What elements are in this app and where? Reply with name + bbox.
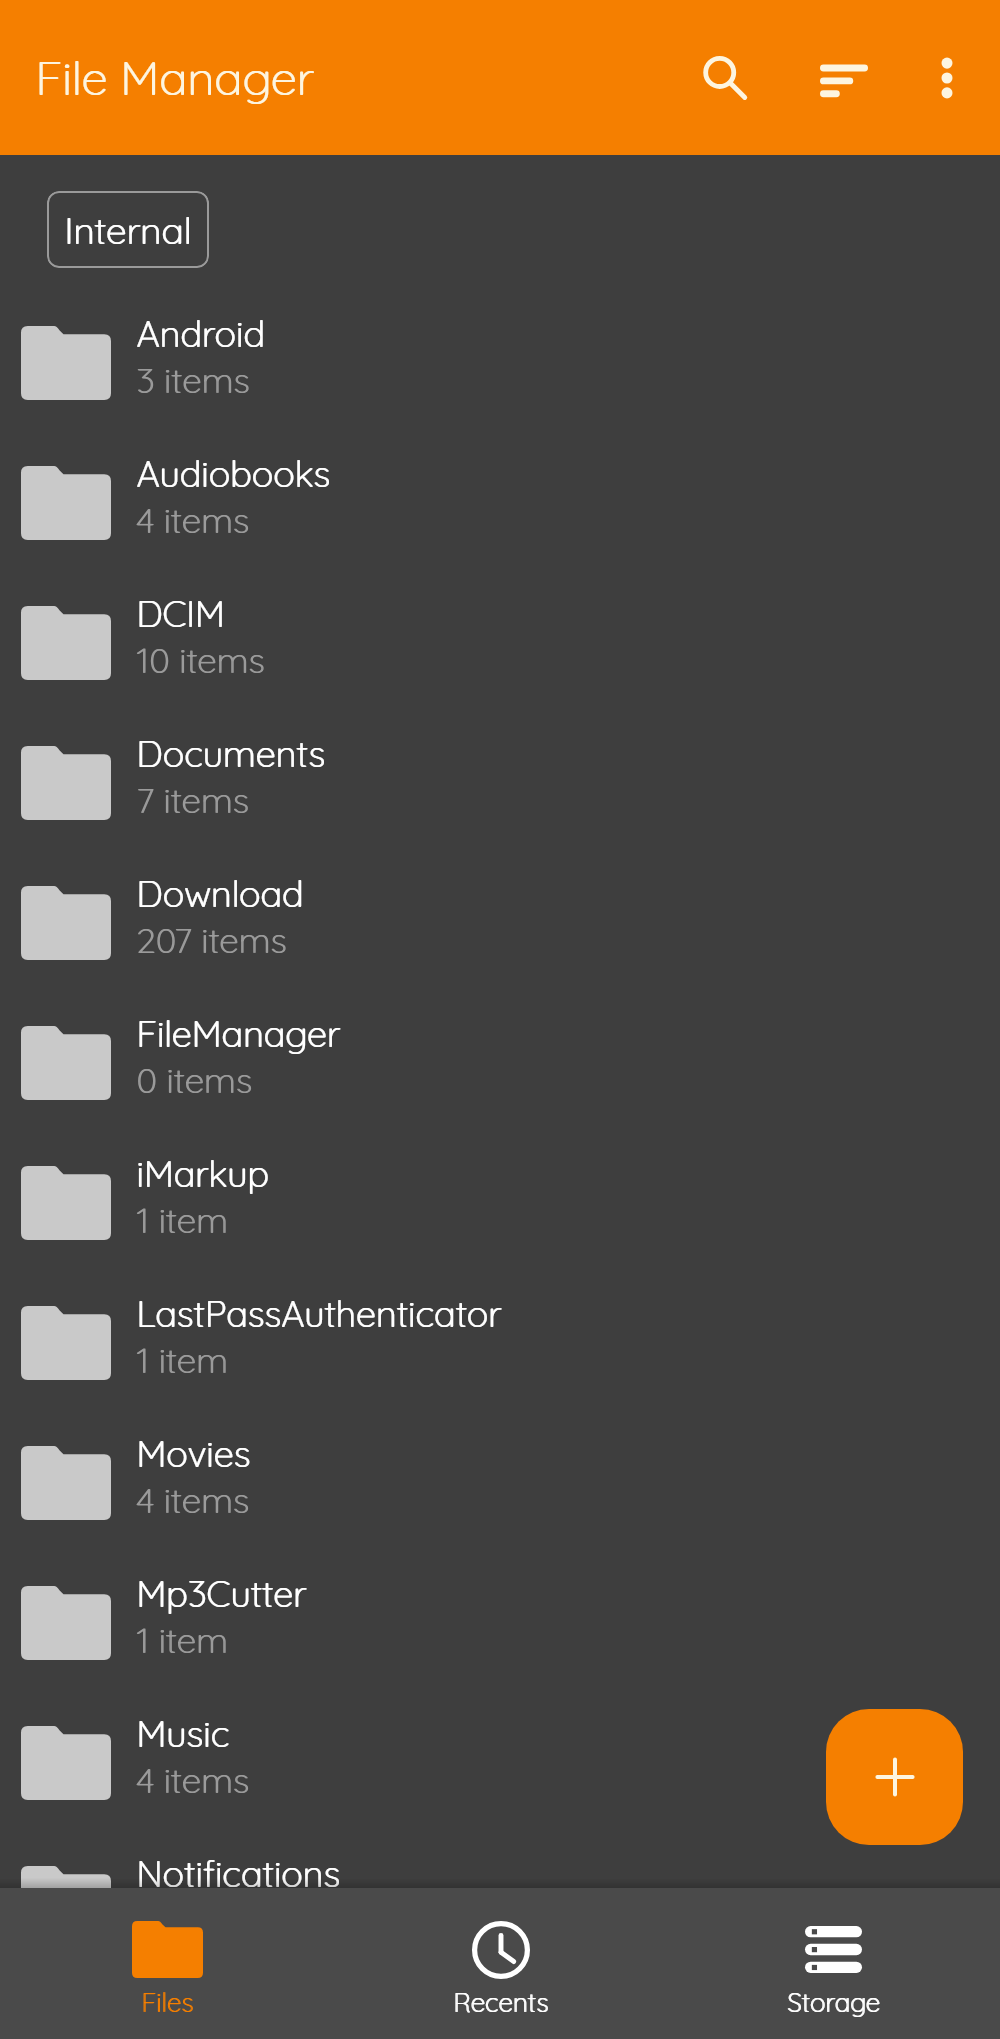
staticText: 1 item — [136, 1618, 228, 1662]
staticText: Download — [136, 871, 304, 916]
staticText: 1 item — [136, 1198, 228, 1242]
staticText: 4 items — [137, 1758, 250, 1802]
button[interactable]: iMarkup — [0, 1133, 1000, 1273]
staticText: 7 items — [137, 778, 250, 822]
button[interactable]: Add — [826, 1709, 963, 1845]
staticText: Internal — [65, 207, 193, 253]
staticText: 4 items — [137, 498, 250, 542]
staticText: Recents — [453, 1986, 549, 2019]
button[interactable]: Storage — [667, 1888, 1000, 2039]
staticText: 207 items — [137, 918, 288, 962]
staticText: Internal — [64, 207, 192, 253]
staticText: Audiobooks — [137, 451, 331, 496]
button[interactable]: Music — [0, 1693, 1000, 1833]
staticText: 207 items — [136, 918, 287, 962]
staticText: Download — [137, 871, 305, 916]
staticText: Mp3Cutter — [137, 1571, 308, 1616]
button[interactable]: Recents — [334, 1888, 667, 2039]
staticText: Notifications — [136, 1851, 340, 1888]
staticText: Recents — [454, 1986, 550, 2019]
button[interactable]: Android — [0, 293, 1000, 433]
staticText: Storage — [787, 1986, 880, 2019]
staticText: 4 items — [136, 498, 249, 542]
staticText: 3 items — [137, 358, 251, 402]
staticText: Movies — [136, 1431, 250, 1476]
button[interactable]: Notifications — [0, 1833, 1000, 1888]
button[interactable]: Files — [0, 1888, 334, 2039]
staticText: 3 items — [136, 358, 250, 402]
staticText: Android — [136, 311, 265, 356]
button[interactable]: Mp3Cutter — [0, 1553, 1000, 1693]
staticText: FileManager — [136, 1011, 340, 1056]
staticText: DCIM — [137, 591, 226, 636]
button[interactable]: More options — [901, 32, 993, 124]
staticText: 0 items — [137, 1058, 253, 1102]
staticText: Notifications — [137, 1851, 341, 1888]
staticText: 1 item — [137, 1338, 229, 1382]
staticText: LastPassAuthenticator — [137, 1291, 503, 1336]
staticText: Mp3Cutter — [136, 1571, 307, 1616]
staticText: Documents — [136, 731, 325, 776]
button[interactable]: Documents — [0, 713, 1000, 853]
button[interactable]: FileManager — [0, 993, 1000, 1133]
staticText: 1 item — [136, 1338, 228, 1382]
staticText: iMarkup — [136, 1151, 269, 1196]
staticText: DCIM — [136, 591, 225, 636]
button[interactable]: Search — [679, 32, 771, 124]
staticText: 4 items — [137, 1478, 250, 1522]
button[interactable]: DCIM — [0, 573, 1000, 713]
staticText: 1 item — [137, 1198, 229, 1242]
staticText: Android — [137, 311, 266, 356]
staticText: Storage — [788, 1986, 881, 2019]
staticText: File Manager — [35, 48, 314, 107]
staticText: Files — [141, 1986, 194, 2019]
staticText: iMarkup — [137, 1151, 270, 1196]
staticText: 7 items — [136, 778, 249, 822]
button[interactable]: Movies — [0, 1413, 1000, 1553]
staticText: Documents — [137, 731, 326, 776]
staticText: 4 items — [136, 1478, 249, 1522]
staticText: File Manager — [36, 48, 315, 107]
staticText: Music — [136, 1711, 229, 1756]
staticText: Music — [137, 1711, 230, 1756]
staticText: FileManager — [137, 1011, 341, 1056]
button[interactable]: Audiobooks — [0, 433, 1000, 573]
staticText: Files — [142, 1986, 195, 2019]
staticText: 10 items — [137, 638, 266, 682]
staticText: Movies — [137, 1431, 251, 1476]
button[interactable]: Sort — [798, 32, 890, 124]
button[interactable]: LastPassAuthenticator — [0, 1273, 1000, 1413]
staticText: Audiobooks — [136, 451, 330, 496]
staticText: 10 items — [136, 638, 265, 682]
button[interactable]: Download — [0, 853, 1000, 993]
button[interactable]: Internal — [47, 191, 209, 268]
staticText: 1 item — [137, 1618, 229, 1662]
staticText: 0 items — [136, 1058, 252, 1102]
staticText: LastPassAuthenticator — [136, 1291, 502, 1336]
staticText: 4 items — [136, 1758, 249, 1802]
